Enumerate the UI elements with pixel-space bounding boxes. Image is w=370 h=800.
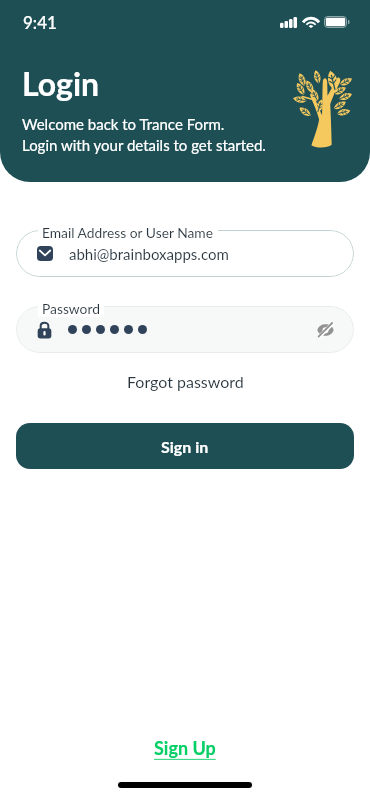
staticText: abhi@brainboxapps.com xyxy=(69,245,229,263)
staticText: Login xyxy=(22,64,100,102)
staticText: Login with your details to get started. xyxy=(22,136,266,154)
button[interactable]: Sign in xyxy=(16,423,354,469)
staticText: Forgot password xyxy=(127,372,244,391)
button[interactable]: Show password xyxy=(313,318,337,342)
staticText: Sign Up xyxy=(154,737,216,759)
staticText: Password xyxy=(42,300,100,317)
staticText: 9:41 xyxy=(23,12,57,32)
staticText: Email Address or User Name xyxy=(42,224,214,241)
button[interactable]: abhi@brainboxapps.com xyxy=(16,230,354,277)
staticText: Welcome back to Trance Form. xyxy=(22,115,225,133)
button[interactable]: Forgot password xyxy=(123,368,248,395)
staticText: Sign in xyxy=(161,437,209,456)
button[interactable]: Sign Up xyxy=(151,734,219,762)
button[interactable]: Show password xyxy=(16,306,354,353)
